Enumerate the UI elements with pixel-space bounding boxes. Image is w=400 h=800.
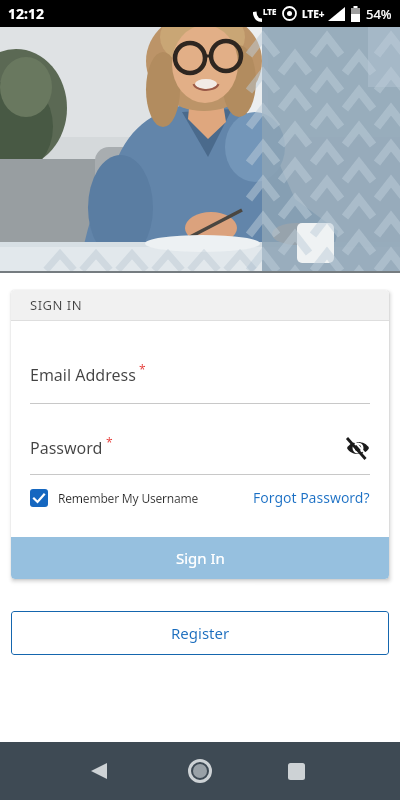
staticText: LTE+ [302, 7, 325, 21]
button[interactable] [275, 742, 317, 800]
button[interactable] [346, 437, 370, 459]
button[interactable] [78, 742, 120, 800]
button[interactable]: Sign In [11, 537, 389, 579]
staticText: Password [30, 437, 103, 459]
staticText: Sign In [176, 548, 225, 568]
staticText: SIGN IN [30, 296, 83, 314]
staticText: 54% [366, 5, 392, 23]
staticText: 12:12 [8, 4, 44, 23]
staticText: * [103, 434, 113, 450]
staticText: Email Address [30, 364, 136, 386]
button[interactable]: Register [11, 611, 389, 655]
staticText: Register [171, 623, 230, 643]
button[interactable] [179, 742, 221, 800]
staticText: Remember My Username [58, 490, 199, 506]
staticText: LTE [263, 6, 277, 17]
button[interactable]: Forgot Password? [253, 488, 370, 507]
staticText: * [136, 361, 146, 377]
button[interactable]: Remember My Username [30, 489, 199, 507]
